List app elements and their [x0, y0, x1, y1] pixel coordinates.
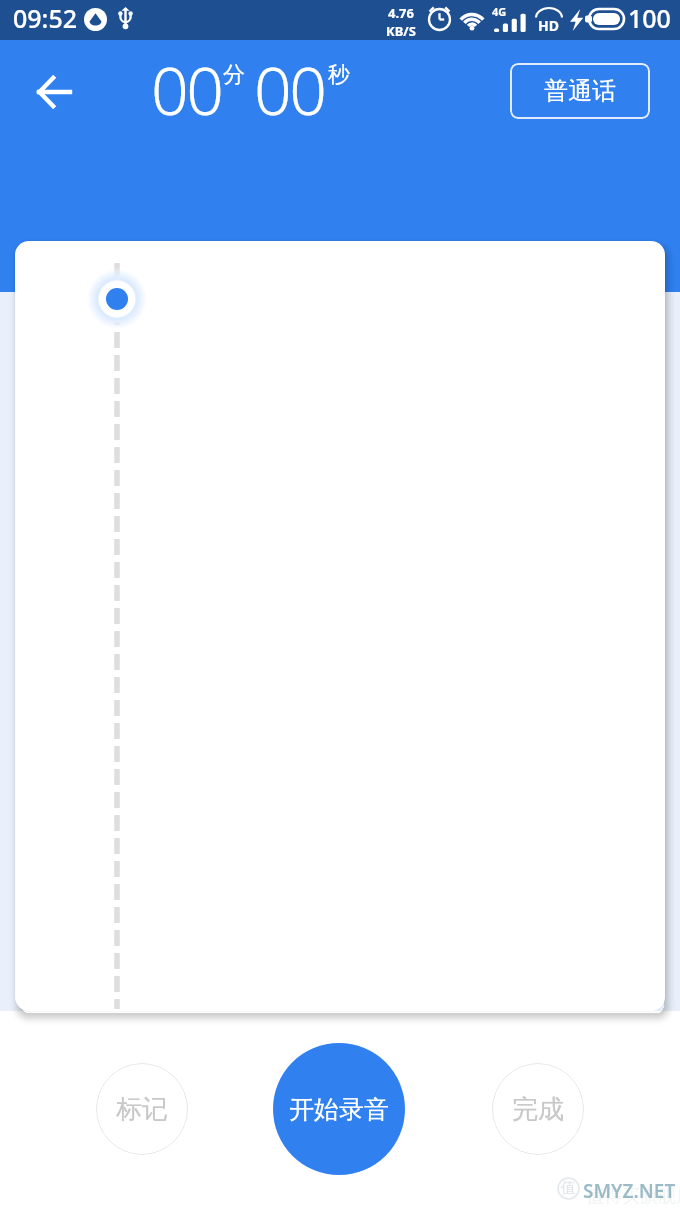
staticText: SMYZ.NET	[583, 1178, 676, 1204]
staticText: 00	[254, 44, 325, 134]
staticText: 完成	[512, 1093, 564, 1126]
button[interactable]: 完成	[492, 1063, 584, 1155]
staticText: 100	[628, 1, 671, 35]
staticText: KB/S	[386, 22, 416, 40]
staticText: 值得买旗舰店	[586, 1185, 680, 1208]
staticText: 分	[223, 61, 245, 89]
staticText: 标记	[116, 1093, 168, 1126]
staticText: HD	[538, 16, 559, 35]
staticText: 普通话	[544, 76, 616, 106]
button[interactable]: Back	[27, 66, 79, 118]
staticText: 开始录音	[289, 1094, 389, 1125]
button[interactable]: 开始录音	[273, 1043, 405, 1175]
staticText: 4G	[492, 4, 507, 19]
staticText: 值	[561, 1179, 576, 1198]
button[interactable]: 普通话	[510, 63, 650, 119]
button[interactable]: 标记	[96, 1063, 188, 1155]
staticText: 4.76	[388, 4, 414, 22]
staticText: 00	[151, 44, 222, 134]
staticText: 09:52	[13, 1, 78, 35]
staticText: 秒	[328, 61, 350, 89]
